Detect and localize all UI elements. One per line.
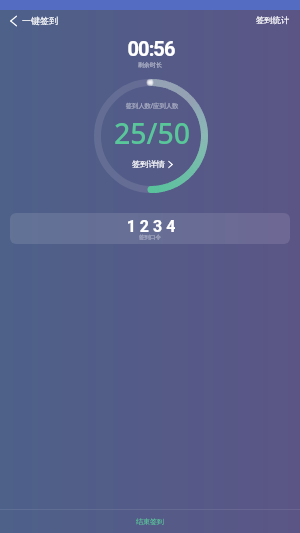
button[interactable]: 结束签到 — [0, 510, 300, 533]
staticText: 结束签到 — [136, 517, 164, 526]
staticText: 签到详情 — [132, 159, 165, 169]
staticText: 签到口令 — [10, 234, 290, 241]
staticText: 签到人数/应到人数 — [2, 101, 300, 110]
button[interactable]: 签到统计 — [248, 12, 300, 28]
staticText: 00:56 — [1, 37, 300, 60]
staticText: 签到统计 — [256, 15, 290, 25]
button[interactable]: 1 2 3 4 — [10, 213, 290, 244]
other: 返回 — [10, 16, 17, 26]
button[interactable]: 签到详情 — [126, 156, 179, 172]
staticText: 一键签到 — [22, 15, 58, 26]
staticText: 剩余时长 — [0, 61, 300, 69]
staticText: 1 2 3 4 — [11, 217, 290, 236]
staticText: 25/50 — [2, 114, 300, 153]
button[interactable]: 返回 — [6, 12, 64, 29]
